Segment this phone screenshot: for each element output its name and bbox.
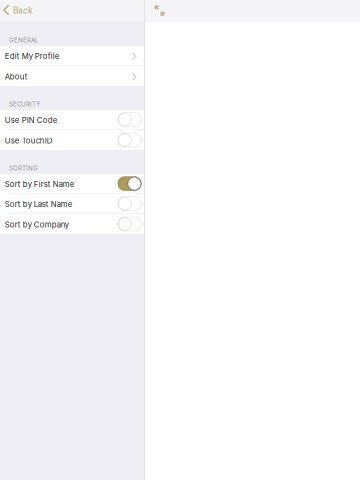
staticText: Sort by Last Name	[5, 200, 73, 209]
button[interactable]: Back	[0, 0, 144, 21]
button[interactable]: Expand sidebar	[145, 0, 173, 21]
button[interactable]: About	[0, 66, 144, 86]
staticText: Sort by Company	[5, 220, 69, 229]
staticText: SORTING	[9, 165, 38, 172]
button[interactable]: Use PIN Code	[0, 110, 144, 130]
button[interactable]: Use TouchID	[0, 130, 144, 150]
staticText: About	[5, 72, 28, 81]
staticText: Back	[13, 5, 33, 15]
staticText: Use TouchID	[5, 136, 53, 145]
button[interactable]: Sort by Company	[0, 214, 144, 234]
button[interactable]: Sort by First Name	[0, 174, 144, 194]
button[interactable]: Sort by Last Name	[0, 194, 144, 214]
staticText: Sort by First Name	[5, 180, 75, 189]
button[interactable]: Edit My Profile	[0, 46, 144, 66]
staticText: Edit My Profile	[5, 52, 60, 61]
staticText: SECURITY	[9, 101, 40, 108]
staticText: Use PIN Code	[5, 116, 58, 125]
staticText: GENERAL	[9, 37, 38, 44]
